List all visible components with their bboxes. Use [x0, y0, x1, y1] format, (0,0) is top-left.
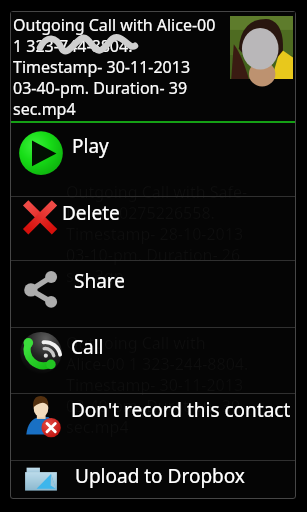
- button[interactable]: Share: [11, 261, 295, 328]
- button[interactable]: Delete: [11, 197, 295, 261]
- button[interactable]: Call: [11, 328, 295, 394]
- staticText: Outgoing Call with Alice-00 1 323-744-88…: [13, 14, 216, 120]
- staticText: Outgoing Call with Safe- Danso-027522655…: [66, 181, 297, 287]
- staticText: Delete: [62, 200, 120, 226]
- staticText: Play: [72, 133, 109, 159]
- button[interactable]: Don't record this contact: [11, 394, 295, 461]
- staticText: Share: [74, 268, 126, 294]
- button[interactable]: Upload to Dropbox: [11, 461, 295, 498]
- staticText: Call: [71, 334, 104, 360]
- staticText: Outgoing Call with Alice-00 1 323-244-88…: [66, 332, 297, 438]
- staticText: Upload to Dropbox: [75, 463, 245, 489]
- button[interactable]: Play: [11, 123, 295, 197]
- staticText: Don't record this contact: [71, 397, 291, 423]
